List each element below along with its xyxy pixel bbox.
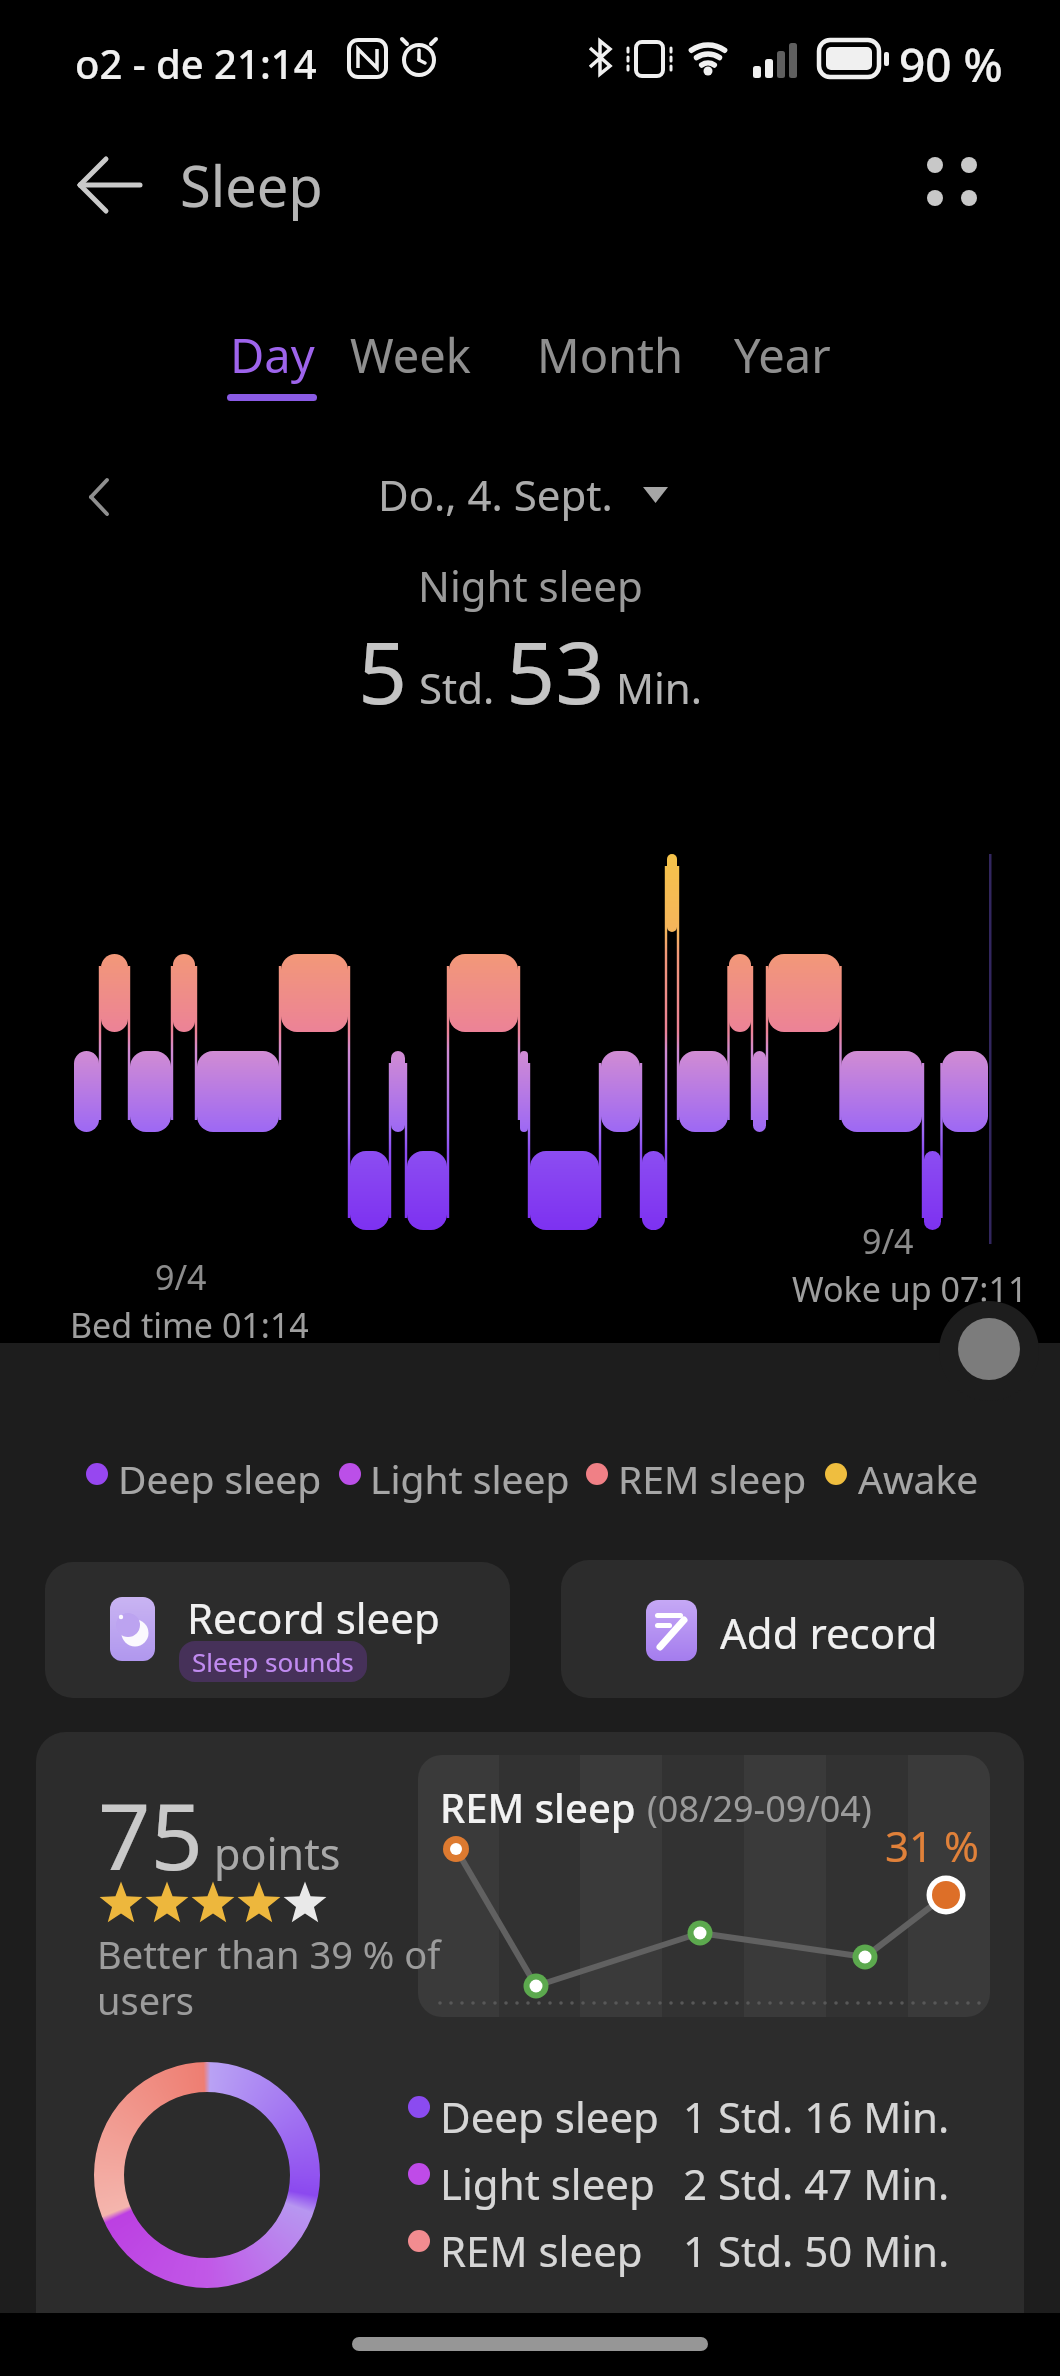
staticText: REM sleep [440,2222,643,2279]
staticText: Add record [720,1604,938,1661]
button[interactable]: Month [525,320,695,390]
staticText: Record sleep [187,1589,440,1646]
staticText: 53 [506,612,605,729]
staticText: REM sleep [440,1780,647,1834]
staticText: points [214,1824,341,1883]
staticText: Light sleep [440,2155,655,2212]
staticText: Min. [605,659,703,716]
button[interactable] [905,140,1000,230]
button[interactable]: Day [210,320,335,390]
button[interactable]: Do., 4. Sept. [355,462,675,526]
staticText: 9/4 [862,1218,914,1264]
staticText: 1 Std. 16 Min. [683,2088,950,2145]
staticText: 9/4 [155,1254,207,1300]
button[interactable]: Week [340,320,480,390]
staticText: users [97,1974,195,2026]
button[interactable] [60,150,155,220]
staticText: Night sleep [418,557,643,614]
staticText: o2 - de 21:14 [75,36,317,90]
staticText: Woke up 07:11 [792,1266,1028,1312]
button[interactable]: 75 [36,1732,1024,2376]
staticText: Light sleep [370,1452,570,1505]
staticText: 75 [98,1772,204,1897]
button[interactable]: Record sleep [45,1562,510,1698]
staticText: Deep sleep [440,2088,659,2145]
staticText: 31 % [885,1817,979,1874]
staticText: Day [230,323,315,387]
staticText: Awake [858,1452,979,1505]
staticText: 1 Std. 50 Min. [683,2222,950,2279]
staticText: Week [350,323,471,387]
staticText: Deep sleep [118,1452,322,1505]
staticText: Sleep [180,147,323,223]
staticText: (08/29-09/04) [647,1784,872,1833]
button[interactable]: Year [720,320,845,390]
staticText: Bed time 01:14 [70,1302,309,1348]
staticText: 5 [358,612,408,729]
staticText: Sleep sounds [192,1644,354,1679]
staticText: Month [537,323,684,387]
staticText: Better than 39 % of [97,1928,441,1980]
staticText: Std. [408,659,506,716]
staticText: Do., 4. Sept. [378,466,613,523]
staticText: REM sleep [618,1452,807,1505]
staticText: Year [734,323,831,387]
staticText: 90 % [899,33,1003,96]
staticText: 2 Std. 47 Min. [683,2155,950,2212]
button[interactable] [958,1318,1020,1380]
button[interactable]: Add record [561,1560,1024,1698]
